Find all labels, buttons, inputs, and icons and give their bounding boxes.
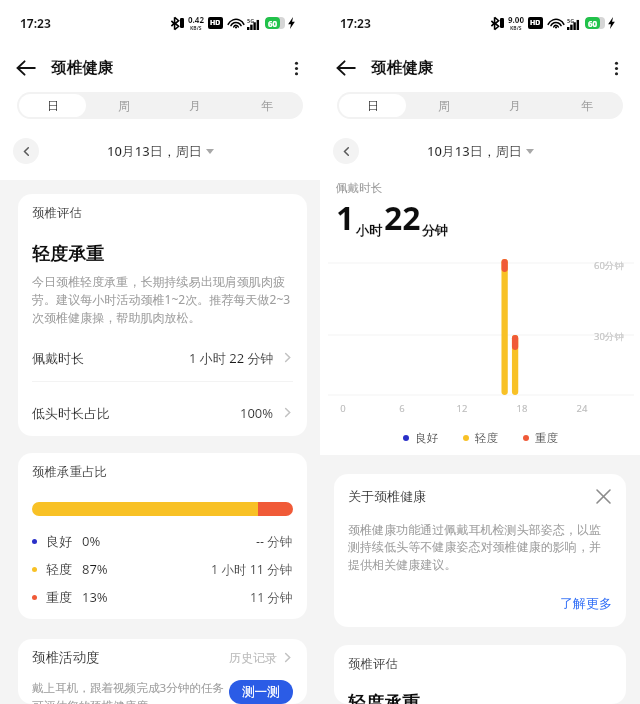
staticText: 轻度承重 <box>348 692 420 704</box>
staticText: 颈椎健康 <box>371 58 433 78</box>
staticText: 关于颈椎健康 <box>348 488 426 504</box>
staticText: 9.00 <box>508 14 524 25</box>
staticText: 17:23 <box>340 15 371 31</box>
staticText: 5G <box>247 17 255 24</box>
staticText: 月 <box>509 98 521 113</box>
staticText: 颈椎健康 <box>51 58 113 78</box>
staticText: 1 小时 11 分钟 <box>211 561 293 578</box>
staticText: 60 <box>588 18 598 29</box>
staticText: 0% <box>82 532 101 550</box>
staticText: 历史记录 <box>229 650 277 665</box>
staticText: 重度 <box>46 589 72 605</box>
staticText: 佩戴时长 <box>336 181 382 195</box>
staticText: 0 <box>333 402 353 415</box>
staticText: HD <box>210 18 221 28</box>
staticText: 5G <box>567 17 575 24</box>
button[interactable]: 月 <box>161 94 229 117</box>
button[interactable]: 测一测 <box>229 680 293 704</box>
button[interactable]: 10月13日，周日 <box>427 142 534 160</box>
staticText: 分钟 <box>422 222 448 238</box>
staticText: 24 <box>572 402 592 415</box>
button[interactable]: More options <box>281 53 311 83</box>
staticText: 年 <box>581 98 593 113</box>
staticText: 颈椎健康功能通过佩戴耳机检测头部姿态，以监测持续低头等不健康姿态对颈椎健康的影响… <box>348 522 612 573</box>
staticText: 年 <box>261 98 273 113</box>
staticText: 轻度 <box>46 561 72 577</box>
staticText: 87% <box>82 560 108 578</box>
staticText: 17:23 <box>20 15 51 31</box>
staticText: 10月13日，周日 <box>427 142 522 160</box>
staticText: 日 <box>47 98 59 113</box>
button[interactable]: Close <box>594 487 612 505</box>
staticText: 0.42 <box>188 14 204 25</box>
staticText: 周 <box>438 98 450 113</box>
staticText: 重度 <box>535 431 558 445</box>
staticText: 18 <box>512 402 532 415</box>
staticText: 颈椎评估 <box>32 205 82 221</box>
staticText: 月 <box>189 98 201 113</box>
button[interactable]: 周 <box>90 94 157 117</box>
button[interactable]: 年 <box>233 94 301 117</box>
staticText: 60 <box>268 18 278 29</box>
staticText: HD <box>530 18 541 28</box>
staticText: 颈椎活动度 <box>32 649 100 666</box>
staticText: 良好 <box>415 431 438 445</box>
staticText: 30分钟 <box>594 330 624 343</box>
button[interactable]: 了解更多 <box>560 595 612 611</box>
staticText: KB/S <box>190 25 202 32</box>
staticText: 小时 <box>356 222 382 238</box>
staticText: 低头时长占比 <box>32 405 110 421</box>
staticText: 6 <box>392 402 412 415</box>
staticText: 周 <box>118 98 130 113</box>
staticText: 轻度承重 <box>32 243 104 266</box>
button[interactable]: Back <box>8 50 44 86</box>
button[interactable]: Back <box>328 50 364 86</box>
button[interactable]: 佩戴时长 <box>32 327 293 381</box>
staticText: -- 分钟 <box>256 533 293 550</box>
button[interactable]: 日 <box>19 94 86 117</box>
staticText: 戴上耳机，跟着视频完成3分钟的任务，即可评估您的颈椎健康度 <box>32 680 249 704</box>
staticText: KB/S <box>510 25 522 32</box>
staticText: 1 小时 22 分钟 <box>189 349 274 367</box>
button[interactable]: 10月13日，周日 <box>107 142 214 160</box>
staticText: 10月13日，周日 <box>107 142 202 160</box>
button[interactable]: Previous day <box>13 138 39 164</box>
staticText: 13% <box>82 588 108 606</box>
staticText: 12 <box>452 402 472 415</box>
staticText: 60分钟 <box>594 259 624 272</box>
button[interactable]: 日 <box>339 94 406 117</box>
button[interactable]: 周 <box>410 94 477 117</box>
staticText: 今日颈椎轻度承重，长期持续易出现肩颈肌肉疲劳。建议每小时活动颈椎1~2次。推荐每… <box>32 274 293 326</box>
staticText: 100% <box>240 404 274 422</box>
staticText: 22 <box>384 196 421 240</box>
staticText: 颈椎评估 <box>348 656 398 672</box>
staticText: 11 分钟 <box>250 589 293 606</box>
button[interactable]: 年 <box>553 94 621 117</box>
staticText: 佩戴时长 <box>32 350 84 366</box>
staticText: 颈椎承重占比 <box>32 464 107 480</box>
staticText: 测一测 <box>242 684 280 700</box>
button[interactable]: More options <box>601 53 631 83</box>
staticText: 日 <box>367 98 379 113</box>
button[interactable]: 历史记录 <box>229 650 293 665</box>
button[interactable]: 低头时长占比 <box>32 382 293 436</box>
staticText: 轻度 <box>475 431 498 445</box>
button[interactable]: 月 <box>481 94 549 117</box>
button[interactable]: Previous day <box>333 138 359 164</box>
staticText: 1 <box>336 196 355 240</box>
staticText: 良好 <box>46 533 72 549</box>
